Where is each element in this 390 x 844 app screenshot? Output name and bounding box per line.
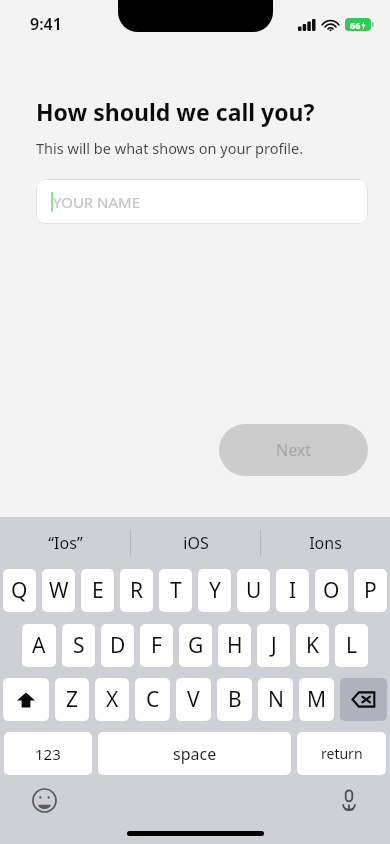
button[interactable]: W xyxy=(42,569,75,612)
button[interactable]: Emoji keyboard xyxy=(29,785,59,815)
staticText: return xyxy=(321,744,363,763)
button[interactable]: iOS xyxy=(131,517,260,569)
staticText: J xyxy=(271,631,277,660)
staticText: Q xyxy=(11,576,28,605)
button[interactable]: X xyxy=(95,678,129,721)
staticText: 9:41 xyxy=(30,13,62,35)
staticText: W xyxy=(49,576,69,605)
staticText: X xyxy=(106,685,119,714)
staticText: 123 xyxy=(35,744,61,764)
button[interactable]: S xyxy=(62,624,95,667)
staticText: How should we call you? xyxy=(36,96,315,127)
staticText: E xyxy=(92,576,104,605)
button[interactable]: O xyxy=(315,569,348,612)
button[interactable]: T xyxy=(159,569,192,612)
staticText: G xyxy=(188,631,204,660)
button[interactable]: U xyxy=(237,569,270,612)
button[interactable]: Delete xyxy=(340,678,387,721)
button[interactable]: J xyxy=(257,624,290,667)
button[interactable]: Next xyxy=(219,424,368,476)
button[interactable]: M xyxy=(299,678,334,721)
staticText: O xyxy=(323,576,340,605)
staticText: This will be what shows on your profile. xyxy=(36,138,304,158)
staticText: iOS xyxy=(183,532,209,554)
button[interactable]: YOUR NAME xyxy=(36,179,368,224)
staticText: F xyxy=(151,631,162,660)
button[interactable]: return xyxy=(297,732,386,775)
button[interactable]: space xyxy=(98,732,291,775)
button[interactable]: E xyxy=(81,569,114,612)
staticText: S xyxy=(73,631,85,660)
staticText: Next xyxy=(276,439,312,461)
staticText: I xyxy=(289,576,297,605)
staticText: D xyxy=(110,631,126,660)
button[interactable]: F xyxy=(140,624,173,667)
button[interactable]: Q xyxy=(3,569,36,612)
staticText: space xyxy=(173,743,217,765)
button[interactable]: I xyxy=(276,569,309,612)
button[interactable]: D xyxy=(101,624,134,667)
button[interactable]: H xyxy=(218,624,251,667)
button[interactable]: Shift xyxy=(3,678,49,721)
staticText: L xyxy=(346,631,358,660)
button[interactable]: P xyxy=(354,569,387,612)
button[interactable]: R xyxy=(120,569,153,612)
button[interactable]: Ions xyxy=(261,517,390,569)
button[interactable]: B xyxy=(217,678,252,721)
staticText: H xyxy=(227,631,243,660)
staticText: T xyxy=(170,576,182,605)
button[interactable]: 123 xyxy=(4,732,92,775)
button[interactable]: “Ios” xyxy=(0,517,130,569)
staticText: N xyxy=(268,685,284,714)
button[interactable]: Z xyxy=(55,678,89,721)
button[interactable]: A xyxy=(22,624,56,667)
staticText: U xyxy=(246,576,262,605)
staticText: K xyxy=(306,631,319,660)
staticText: M xyxy=(307,685,327,714)
staticText: R xyxy=(130,576,144,605)
button[interactable]: L xyxy=(335,624,368,667)
staticText: Ions xyxy=(309,532,342,554)
button[interactable]: N xyxy=(258,678,293,721)
staticText: 66 xyxy=(350,19,361,31)
staticText: “Ios” xyxy=(48,532,83,554)
staticText: B xyxy=(228,685,242,714)
staticText: Z xyxy=(66,685,79,714)
staticText: Y xyxy=(209,576,221,605)
button[interactable]: Y xyxy=(198,569,231,612)
button[interactable]: G xyxy=(179,624,212,667)
staticText: P xyxy=(364,576,377,605)
staticText: YOUR NAME xyxy=(53,192,141,212)
staticText: C xyxy=(146,685,160,714)
staticText: A xyxy=(32,631,46,660)
staticText: V xyxy=(187,685,200,714)
button[interactable]: K xyxy=(296,624,329,667)
button[interactable]: C xyxy=(135,678,170,721)
button[interactable]: V xyxy=(176,678,211,721)
button[interactable]: Dictation xyxy=(334,785,364,815)
